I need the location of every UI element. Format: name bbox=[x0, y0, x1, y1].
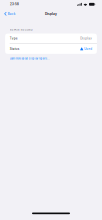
staticText: Display bbox=[45, 12, 57, 16]
button[interactable]: Status bbox=[5, 44, 97, 54]
staticText: 23:58 bbox=[10, 3, 19, 6]
button[interactable]: Type bbox=[5, 34, 97, 43]
staticText: Used bbox=[84, 47, 92, 51]
button[interactable]: Learn more about display repairs... bbox=[10, 57, 50, 60]
staticText: Status bbox=[10, 47, 20, 51]
button[interactable]: Back bbox=[0, 10, 19, 18]
staticText: Learn more about display repairs... bbox=[10, 57, 50, 60]
staticText: REPAIR RECORD bbox=[10, 28, 33, 31]
staticText: Back bbox=[8, 12, 16, 16]
staticText: Display bbox=[80, 37, 92, 40]
staticText: Type bbox=[10, 37, 18, 40]
